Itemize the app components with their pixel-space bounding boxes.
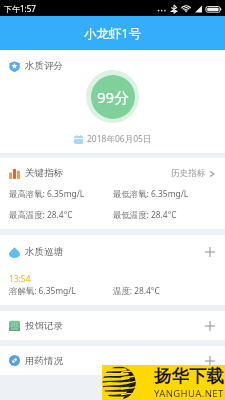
staticText: 最低温度: 28.4°C <box>113 209 177 220</box>
staticText: 最高溶氧: 6.35mg/L <box>9 188 85 199</box>
staticText: YANGHUA.NET <box>154 387 224 400</box>
staticText: 下午1:57 <box>4 3 36 14</box>
button[interactable]: 用药情况 <box>0 346 225 375</box>
staticText: 历史指标 <box>171 168 206 179</box>
staticText: 投饵记录 <box>25 320 63 332</box>
button[interactable]: 投饵记录 <box>0 311 225 340</box>
staticText: 2018年06月05日 <box>87 133 152 145</box>
staticText: 小龙虾1号 <box>84 25 142 42</box>
button[interactable]: 添加用药情况 <box>202 353 218 369</box>
staticText: 99分 <box>97 87 130 107</box>
staticText: 温度: 28.4°C <box>113 285 160 296</box>
button[interactable]: 添加水质巡塘记录 <box>202 244 218 260</box>
staticText: 溶解氧: 6.35mg/L <box>9 285 76 296</box>
staticText: 水质巡塘 <box>25 246 63 258</box>
staticText: 13:54 <box>9 273 31 284</box>
staticText: 最低溶氧: 6.35mg/L <box>113 188 189 199</box>
button[interactable]: 历史指标 <box>171 168 216 179</box>
button[interactable]: 添加投饵记录 <box>202 318 218 334</box>
staticText: 关键指标 <box>25 167 63 179</box>
staticText: 用药情况 <box>25 355 63 367</box>
staticText: 扬华下载 <box>154 365 224 387</box>
staticText: 水质评分 <box>25 60 63 72</box>
staticText: 最高温度: 28.4°C <box>9 209 73 220</box>
